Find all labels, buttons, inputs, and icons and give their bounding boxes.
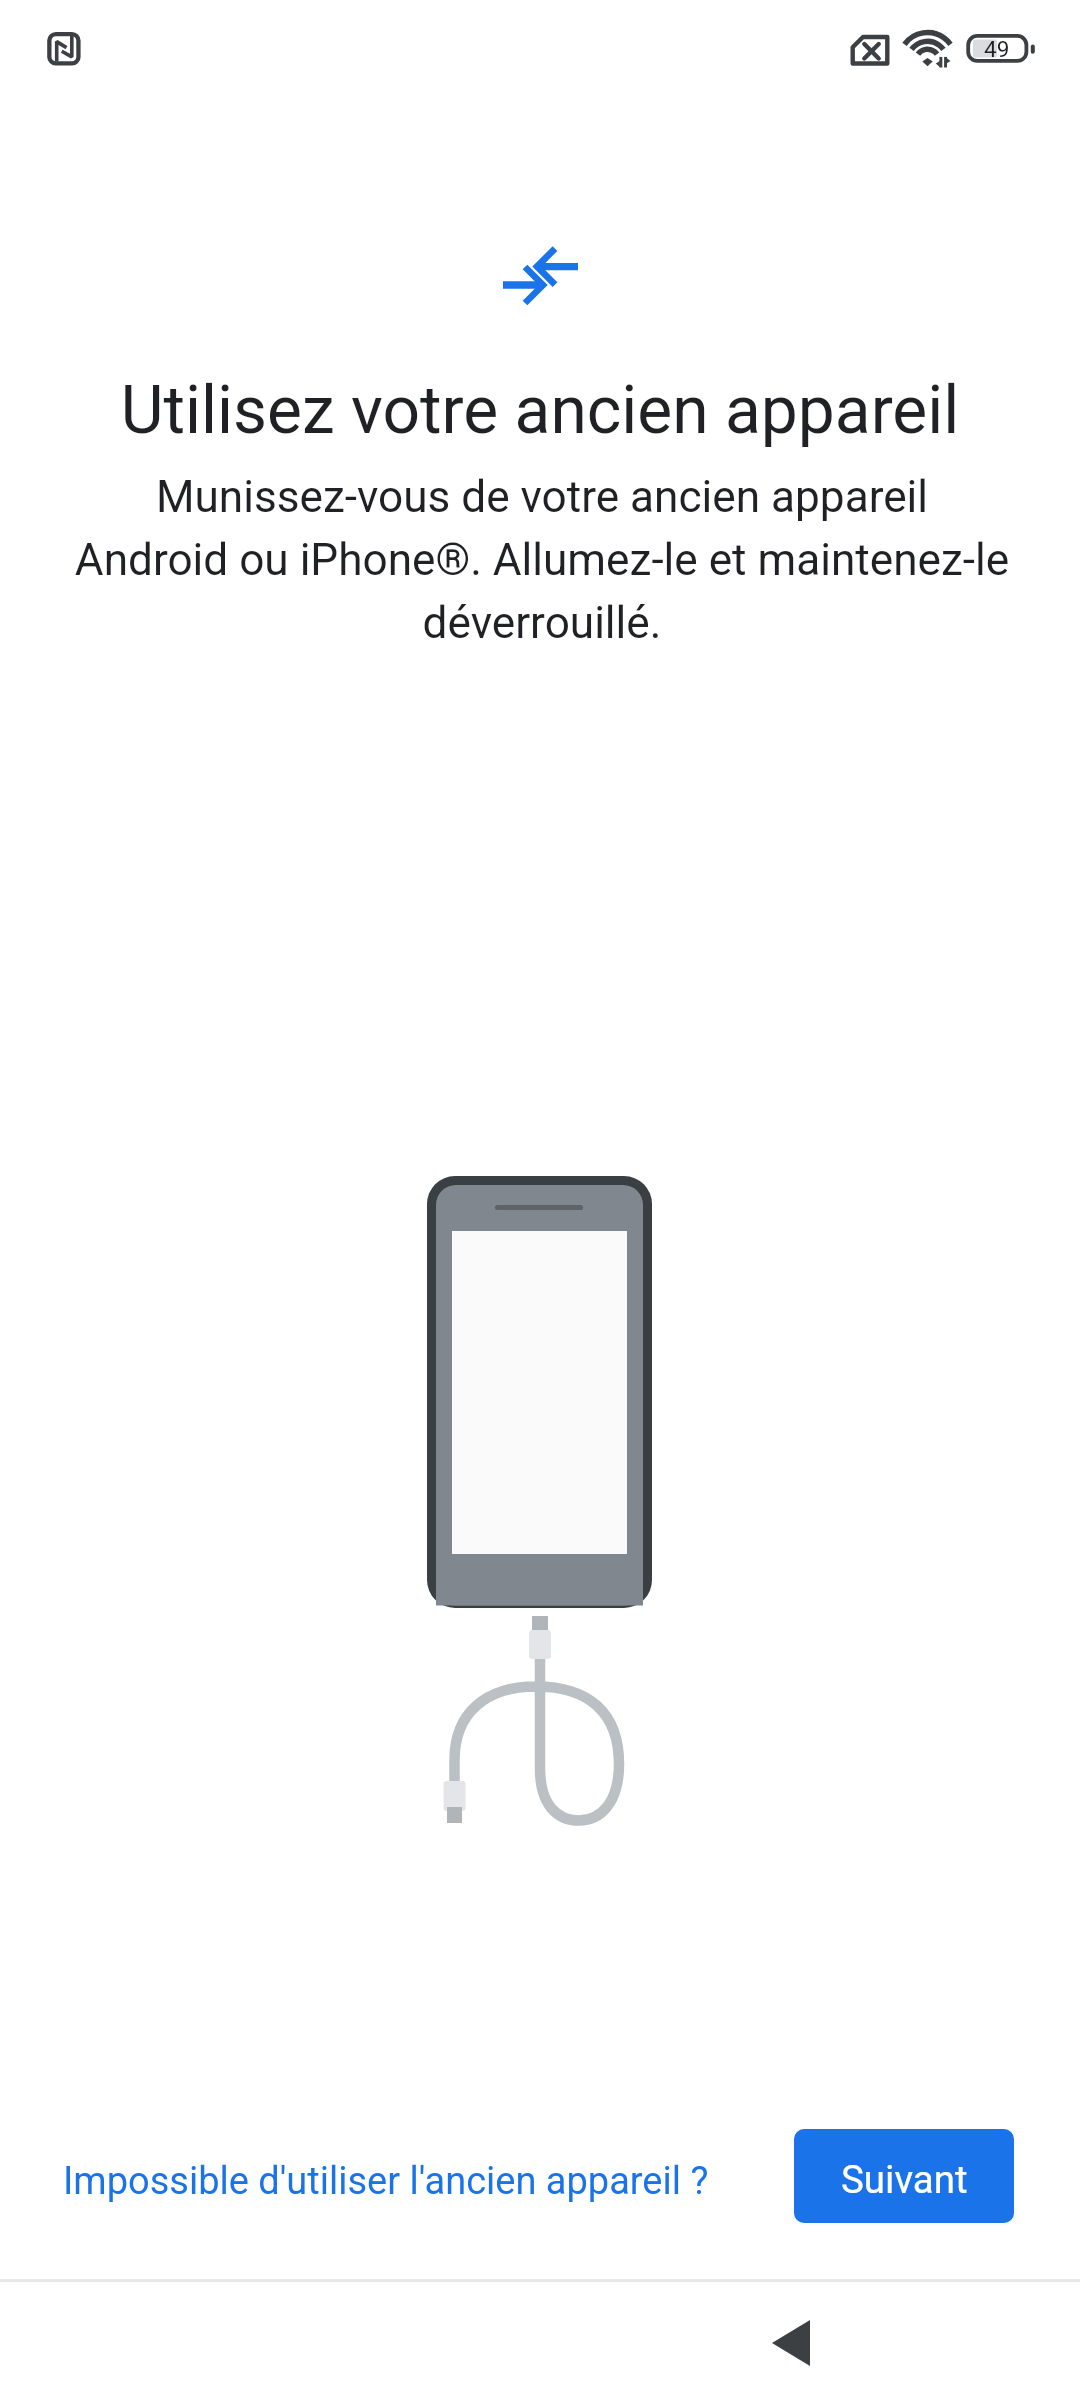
- button[interactable]: Suivant: [794, 2129, 1014, 2223]
- button[interactable]: Back: [736, 2288, 846, 2398]
- staticText: Munissez-vous de votre ancien appareil A…: [62, 471, 1022, 649]
- staticText: Impossible d'utiliser l'ancien appareil …: [63, 2159, 709, 2204]
- staticText: Utilisez votre ancien appareil: [0, 372, 1080, 449]
- button[interactable]: Impossible d'utiliser l'ancien appareil …: [16, 2142, 756, 2220]
- staticText: Suivant: [841, 2157, 968, 2202]
- staticText: 49: [984, 36, 1010, 62]
